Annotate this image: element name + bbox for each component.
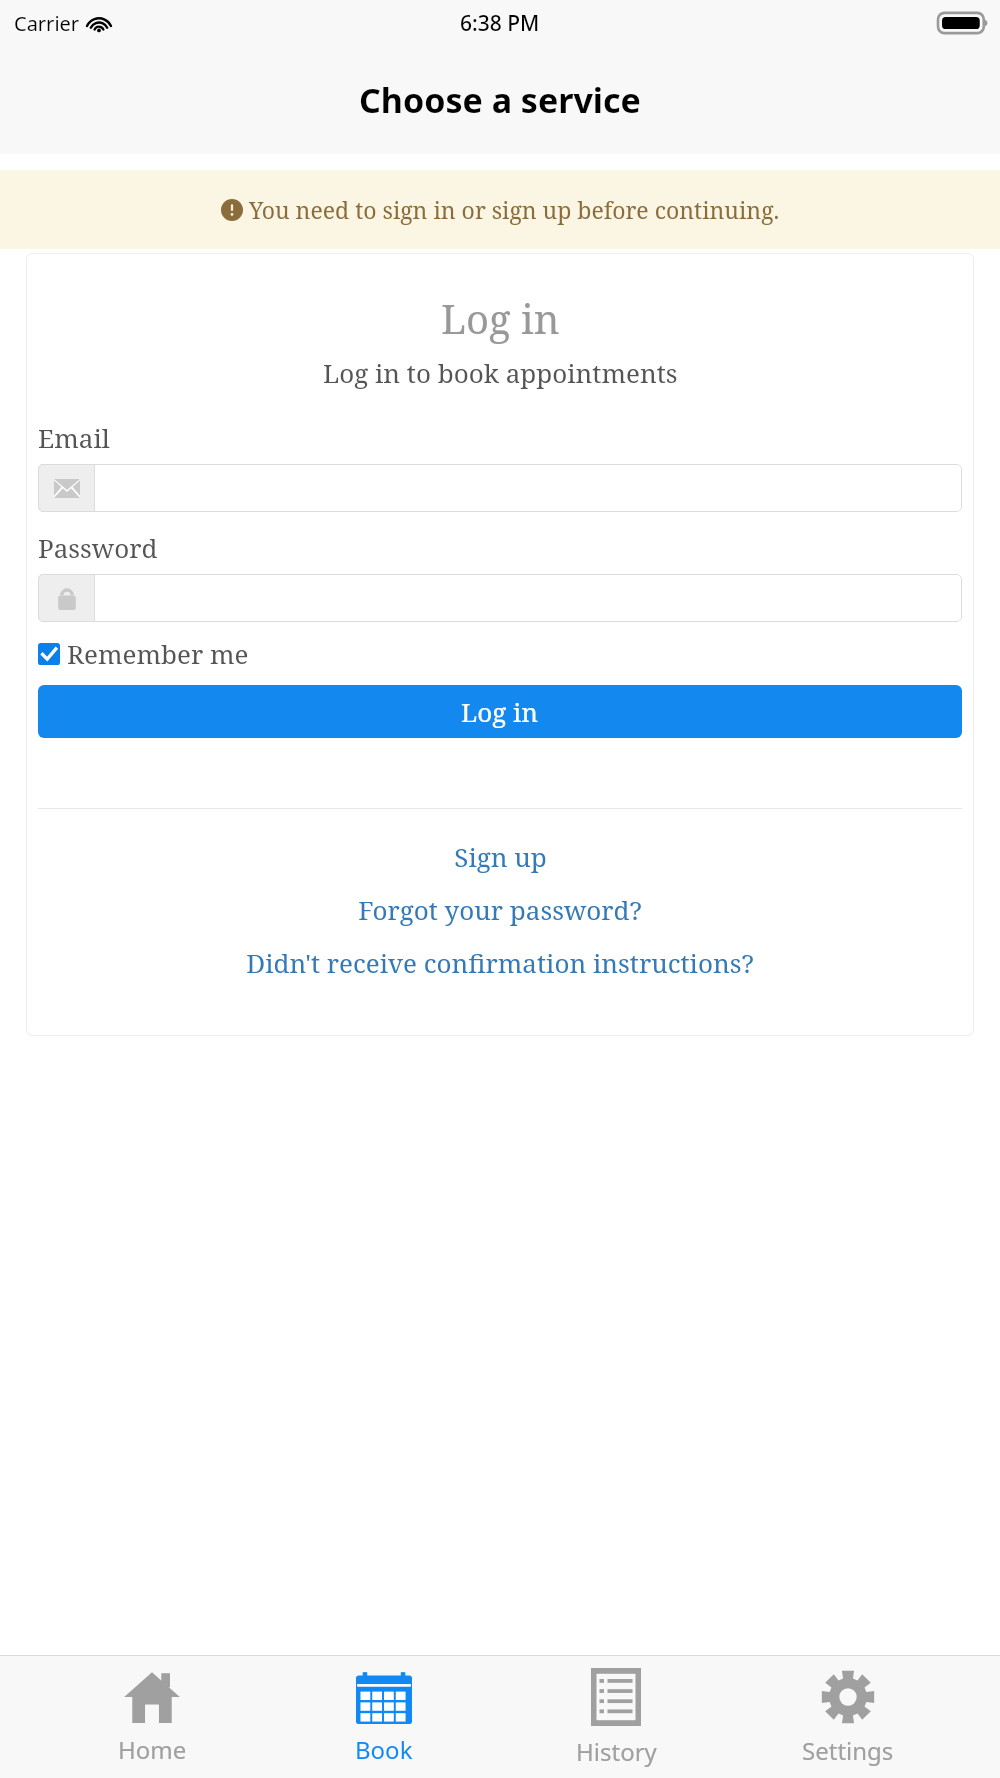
button[interactable]: Home [72,1656,232,1778]
staticText: Book [355,1733,413,1766]
button[interactable]: Forgot your password? [358,892,642,927]
staticText: Remember me [67,636,249,671]
other: Book [356,1670,412,1724]
button[interactable]: Book [304,1656,464,1778]
other: Email [54,479,80,498]
staticText: Sign up [454,839,547,874]
staticText: Log in [441,291,560,345]
other: Home [123,1670,181,1724]
staticText: Log in to book appointments [323,355,678,390]
staticText: Forgot your password? [358,892,642,927]
button[interactable]: Email [38,464,962,512]
staticText: 6:38 PM [460,9,540,38]
staticText: Log in [461,694,539,729]
button[interactable]: Didn't receive confirmation instructions… [246,945,754,980]
button[interactable]: Remember me [38,636,249,671]
staticText: Home [118,1733,187,1766]
staticText: Settings [802,1734,894,1767]
button[interactable]: Settings [768,1656,928,1778]
staticText: History [576,1735,657,1768]
staticText: Didn't receive confirmation instructions… [246,945,754,980]
button[interactable]: History [536,1656,696,1778]
staticText: Email [38,420,110,455]
other: Password [57,586,77,610]
button[interactable]: Password [38,574,962,622]
staticText: You need to sign in or sign up before co… [249,194,780,225]
button[interactable]: Sign up [454,839,547,874]
staticText: Carrier [14,10,80,37]
other: History [591,1668,641,1726]
staticText: Choose a service [359,77,641,123]
staticText: Password [38,530,158,565]
button[interactable]: Log in [38,685,962,738]
other: Settings [820,1669,876,1725]
